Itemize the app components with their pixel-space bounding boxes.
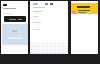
button[interactable] (4, 16, 26, 22)
